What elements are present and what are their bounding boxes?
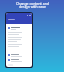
- staticText: Change content and design with ease: [16, 1, 49, 9]
- button[interactable]: [6, 13, 32, 67]
